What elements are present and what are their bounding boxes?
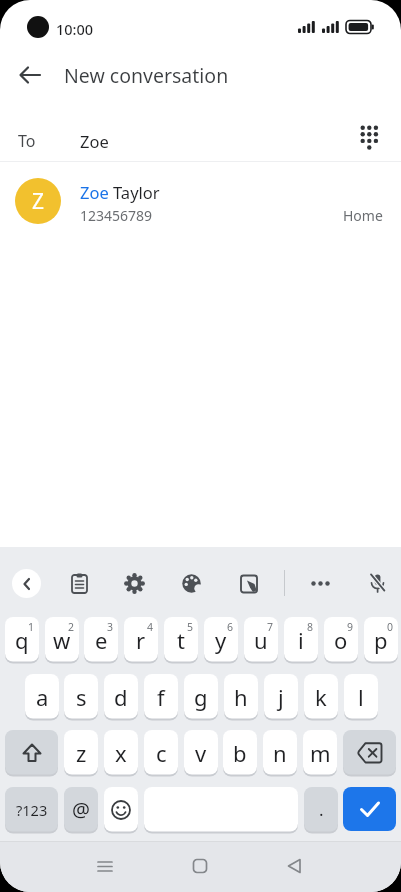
button[interactable]	[5, 730, 58, 775]
button[interactable]: n	[263, 730, 297, 775]
staticText: l	[358, 682, 364, 712]
staticText: w	[53, 625, 71, 655]
button[interactable]: g	[184, 674, 218, 719]
button[interactable]: e	[84, 617, 118, 662]
button[interactable]: x	[104, 730, 138, 775]
button[interactable]	[179, 571, 204, 596]
staticText: Home	[343, 206, 383, 225]
button[interactable]	[308, 571, 333, 596]
staticText: a	[36, 682, 49, 712]
button[interactable]: m	[303, 730, 337, 775]
staticText: 1	[28, 620, 35, 634]
button[interactable]: u	[244, 617, 278, 662]
button[interactable]: t	[164, 617, 198, 662]
button[interactable]: k	[304, 674, 338, 719]
button[interactable]	[185, 851, 215, 881]
staticText: m	[310, 738, 331, 768]
staticText: p	[374, 625, 388, 655]
staticText: 0	[387, 620, 394, 634]
button[interactable]: b	[223, 730, 257, 775]
button[interactable]: Z	[0, 162, 401, 240]
button[interactable]: z	[64, 730, 98, 775]
button[interactable]: @	[64, 787, 98, 832]
staticText: s	[76, 682, 87, 712]
staticText: t	[177, 625, 185, 655]
staticText: 3	[107, 620, 114, 634]
button[interactable]	[67, 571, 92, 596]
staticText: ?123	[16, 800, 48, 820]
staticText: r	[136, 625, 146, 655]
staticText: v	[195, 738, 207, 768]
staticText: u	[254, 625, 268, 655]
staticText: New conversation	[64, 62, 229, 89]
button[interactable]	[343, 787, 396, 831]
staticText: h	[234, 682, 248, 712]
staticText: x	[115, 738, 127, 768]
staticText: j	[278, 682, 284, 712]
staticText: 8	[307, 620, 314, 634]
staticText: Z	[32, 187, 45, 216]
staticText: c	[156, 738, 167, 768]
staticText: .	[319, 798, 324, 821]
button[interactable]: s	[64, 674, 98, 719]
staticText: 6	[227, 620, 234, 634]
button[interactable]	[237, 571, 262, 596]
button[interactable]: c	[144, 730, 178, 775]
button[interactable]: a	[25, 674, 59, 719]
staticText: 4	[147, 620, 154, 634]
button[interactable]	[365, 571, 390, 596]
staticText: 2	[68, 620, 75, 634]
button[interactable]	[10, 55, 50, 95]
staticText: Zoe Taylor	[80, 181, 160, 203]
staticText: 10:00	[56, 19, 94, 39]
staticText: g	[194, 682, 208, 712]
staticText: f	[157, 682, 165, 712]
staticText: @	[72, 796, 90, 823]
staticText: z	[76, 738, 87, 768]
button[interactable]: j	[264, 674, 298, 719]
button[interactable]	[90, 851, 120, 881]
button[interactable]: To	[0, 112, 401, 162]
button[interactable]: y	[204, 617, 238, 662]
button[interactable]	[279, 851, 309, 881]
staticText: 7	[267, 620, 274, 634]
button[interactable]: d	[104, 674, 138, 719]
button[interactable]: h	[224, 674, 258, 719]
staticText: b	[233, 738, 247, 768]
staticText: e	[95, 625, 108, 655]
button[interactable]	[12, 569, 41, 598]
staticText: y	[215, 625, 227, 655]
button[interactable]: v	[184, 730, 218, 775]
button[interactable]	[144, 787, 298, 832]
staticText: 123456789	[80, 206, 153, 225]
button[interactable]	[343, 730, 396, 775]
button[interactable]: p	[364, 617, 398, 662]
button[interactable]: q	[5, 617, 39, 662]
staticText: n	[273, 738, 287, 768]
button[interactable]: w	[45, 617, 79, 662]
button[interactable]: i	[284, 617, 318, 662]
staticText: To	[18, 130, 36, 152]
button[interactable]: f	[144, 674, 178, 719]
staticText: i	[298, 625, 304, 655]
button[interactable]: .	[304, 787, 338, 832]
staticText: Zoe	[80, 130, 109, 152]
staticText: k	[315, 682, 327, 712]
button[interactable]	[104, 787, 138, 832]
staticText: o	[334, 625, 348, 655]
staticText: 5	[187, 620, 194, 634]
staticText: d	[114, 682, 128, 712]
staticText: q	[15, 625, 29, 655]
staticText: 9	[347, 620, 354, 634]
button[interactable]: l	[344, 674, 378, 719]
button[interactable]: r	[124, 617, 158, 662]
button[interactable]: o	[324, 617, 358, 662]
button[interactable]	[122, 571, 147, 596]
button[interactable]: ?123	[5, 787, 58, 832]
